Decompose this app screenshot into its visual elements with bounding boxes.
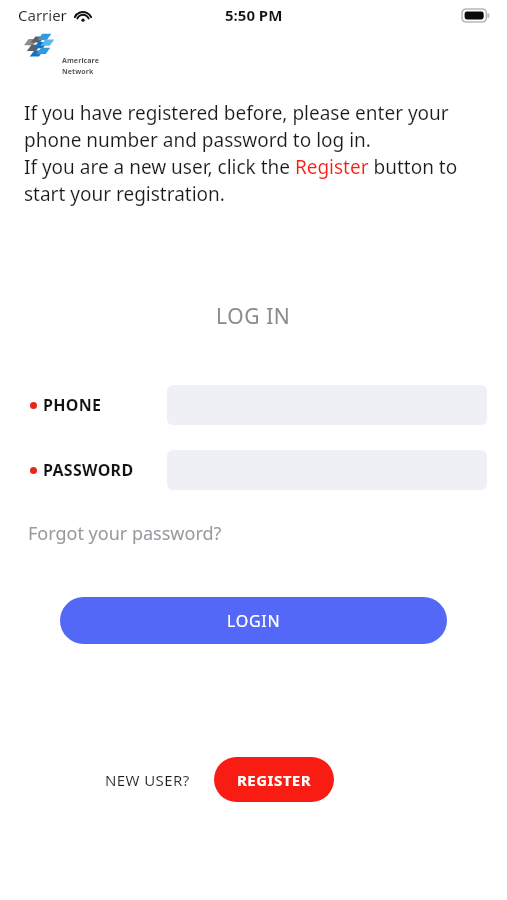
other: Americare Network logo <box>22 38 98 78</box>
staticText: PHONE <box>43 394 102 416</box>
staticText: Carrier <box>18 5 67 25</box>
staticText: Network <box>62 67 94 77</box>
staticText: LOGIN <box>227 610 281 632</box>
staticText: REGISTER <box>237 770 312 790</box>
staticText: If you have registered before, please en… <box>24 100 484 207</box>
staticText: LOG IN <box>216 302 291 331</box>
staticText: 5:50 PM <box>225 5 283 25</box>
staticText: Americare <box>62 56 99 66</box>
staticText: Forgot your password? <box>28 521 222 546</box>
button[interactable]: Forgot your password? <box>24 518 226 549</box>
staticText: NEW USER? <box>105 770 190 790</box>
button[interactable]: LOGIN <box>60 597 447 644</box>
staticText: PASSWORD <box>43 459 134 481</box>
button[interactable]: REGISTER <box>214 757 334 802</box>
